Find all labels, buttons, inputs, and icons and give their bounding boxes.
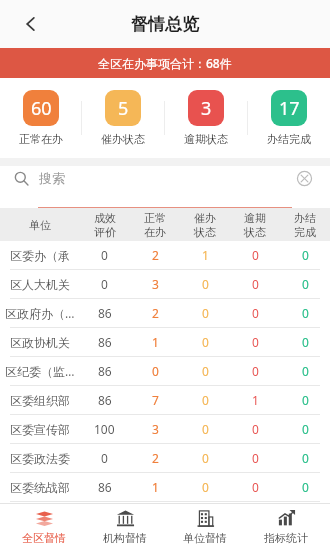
staticText: 全区在办事项合计：68件 [98, 55, 232, 71]
staticText: 2 [152, 247, 159, 263]
staticText: 86 [98, 363, 112, 379]
staticText: 0 [302, 363, 309, 379]
staticText: 100 [94, 421, 115, 437]
staticText: 0 [252, 450, 259, 466]
staticText: 0 [202, 479, 209, 495]
button[interactable]: 区委统战部 [0, 473, 330, 501]
staticText: 1 [152, 479, 159, 495]
staticText: 2 [152, 450, 159, 466]
staticText: 0 [302, 247, 309, 263]
button[interactable]: 17 [248, 90, 330, 146]
staticText: 逾期状态 [184, 132, 228, 146]
staticText: 0 [252, 305, 259, 321]
staticText: 全区督情 [22, 531, 66, 545]
staticText: 0 [202, 334, 209, 350]
staticText: 1 [252, 392, 259, 408]
button[interactable]: 机构督情 [89, 508, 161, 545]
staticText: 完成 [294, 225, 316, 239]
button[interactable]: 区人大机关 [0, 270, 330, 298]
staticText: 3 [201, 96, 212, 121]
staticText: 区委宣传部 [10, 422, 70, 437]
staticText: 逾期 [244, 211, 266, 225]
staticText: 0 [252, 479, 259, 495]
staticText: 0 [202, 392, 209, 408]
staticText: 5 [118, 96, 129, 121]
staticText: 0 [101, 276, 108, 292]
staticText: 7 [152, 392, 159, 408]
staticText: 86 [98, 334, 112, 350]
staticText: 0 [252, 421, 259, 437]
staticText: 正常 [144, 211, 166, 225]
staticText: 办结完成 [267, 132, 311, 146]
staticText: 正常在办 [19, 132, 63, 146]
button[interactable]: 60 [0, 90, 81, 146]
staticText: 1 [202, 247, 209, 263]
staticText: 机构督情 [103, 531, 147, 545]
staticText: 区委办（承 [10, 248, 70, 263]
staticText: 0 [252, 363, 259, 379]
button[interactable]: 区委政法委 [0, 444, 330, 472]
staticText: 0 [152, 363, 159, 379]
staticText: 0 [302, 305, 309, 321]
staticText: 3 [152, 276, 159, 292]
staticText: 状态 [244, 225, 266, 239]
staticText: 在办 [144, 225, 166, 239]
button[interactable]: 区政府办（… [0, 299, 330, 327]
staticText: 0 [202, 363, 209, 379]
staticText: 督情总览 [131, 14, 199, 35]
staticText: 0 [302, 421, 309, 437]
button[interactable]: Back [14, 7, 48, 41]
staticText: 0 [302, 450, 309, 466]
staticText: 17 [279, 96, 300, 121]
button[interactable]: 3 [165, 90, 247, 146]
staticText: 搜索 [39, 170, 292, 186]
staticText: 0 [302, 479, 309, 495]
staticText: 0 [302, 276, 309, 292]
staticText: 0 [202, 276, 209, 292]
staticText: 区政协机关 [10, 335, 70, 350]
staticText: 区政府办（… [5, 305, 75, 321]
staticText: 0 [252, 334, 259, 350]
staticText: 60 [31, 96, 52, 121]
staticText: 0 [252, 247, 259, 263]
button[interactable]: 区纪委（监… [0, 357, 330, 385]
staticText: 单位 [29, 218, 51, 232]
button[interactable]: 指标统计 [250, 508, 322, 545]
staticText: 0 [101, 247, 108, 263]
staticText: 区委政法委 [10, 451, 70, 466]
staticText: 催办 [194, 211, 216, 225]
staticText: 0 [202, 305, 209, 321]
staticText: 区纪委（监… [5, 363, 75, 379]
staticText: 办结 [294, 211, 316, 225]
staticText: 1 [152, 334, 159, 350]
staticText: 0 [302, 334, 309, 350]
staticText: 0 [202, 450, 209, 466]
staticText: 86 [98, 305, 112, 321]
button[interactable]: 区委办（承 [0, 241, 330, 269]
button[interactable]: 区政协机关 [0, 328, 330, 356]
staticText: 指标统计 [264, 531, 308, 545]
staticText: 评价 [94, 225, 116, 239]
staticText: 区委组织部 [10, 393, 70, 408]
staticText: 3 [152, 421, 159, 437]
staticText: 区人大机关 [10, 277, 70, 292]
staticText: 0 [202, 421, 209, 437]
button[interactable]: 全区督情 [8, 508, 80, 545]
staticText: 成效 [94, 211, 116, 225]
staticText: 2 [152, 305, 159, 321]
staticText: 区委统战部 [10, 480, 70, 495]
button[interactable]: 区委组织部 [0, 386, 330, 414]
staticText: 状态 [194, 225, 216, 239]
button[interactable]: 5 [82, 90, 164, 146]
button[interactable]: 单位督情 [169, 508, 241, 545]
staticText: 单位督情 [183, 531, 227, 545]
staticText: 86 [98, 392, 112, 408]
staticText: 0 [302, 392, 309, 408]
staticText: 86 [98, 479, 112, 495]
staticText: 0 [101, 450, 108, 466]
staticText: 0 [252, 276, 259, 292]
button[interactable]: Clear search [292, 166, 316, 190]
staticText: 催办状态 [101, 132, 145, 146]
button[interactable]: 区委宣传部 [0, 415, 330, 443]
